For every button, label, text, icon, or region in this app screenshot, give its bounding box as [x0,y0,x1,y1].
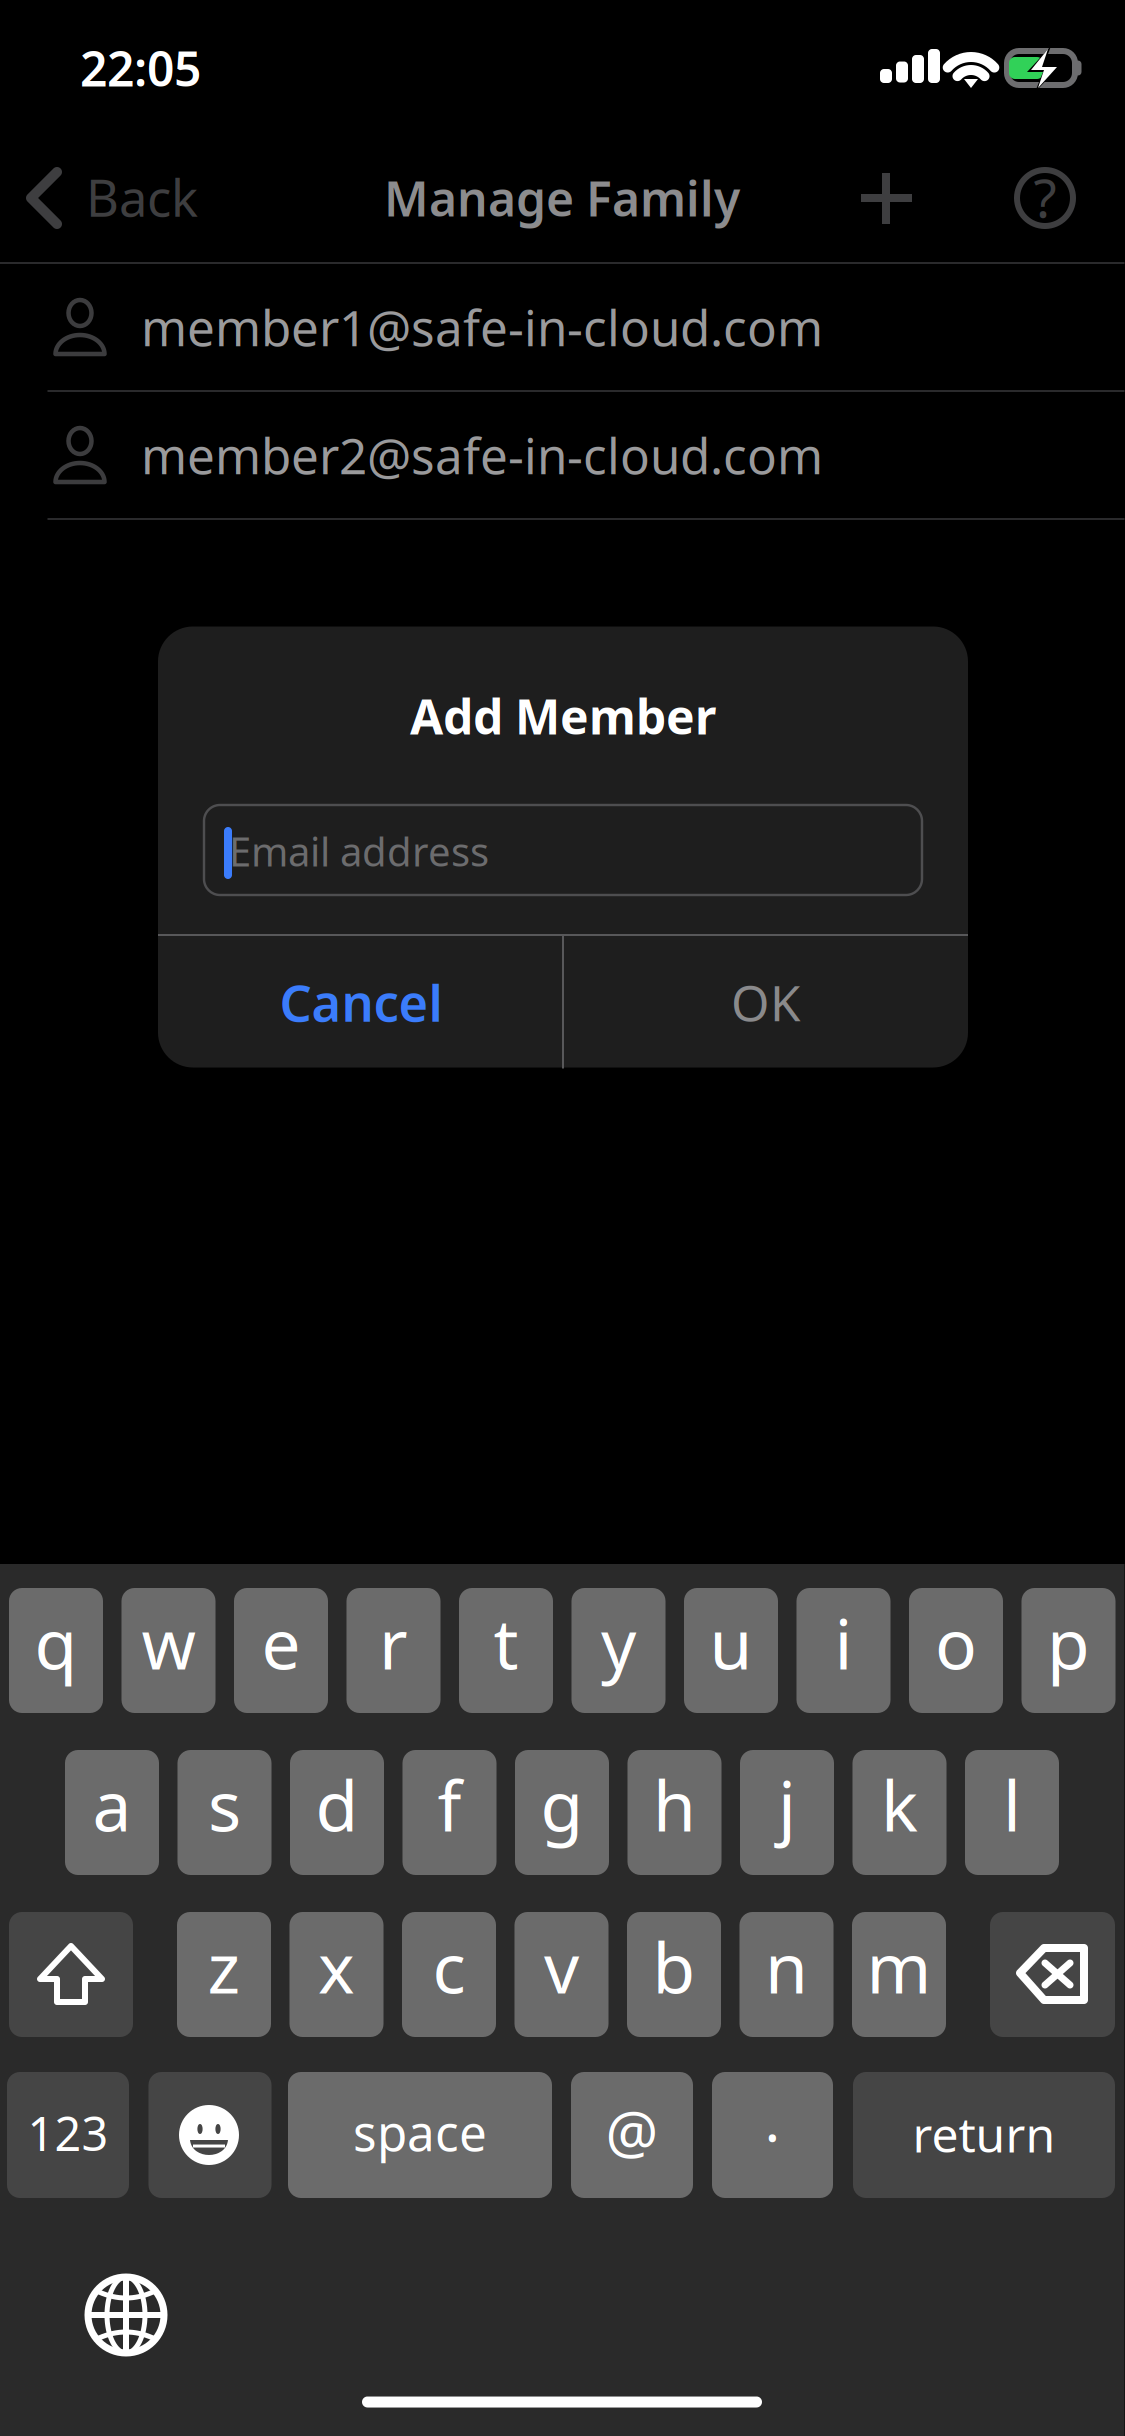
button[interactable]: q [9,1588,103,1713]
button[interactable]: s [177,1750,271,1875]
staticText: z [207,1920,240,2013]
staticText: n [765,1920,808,2013]
staticText: e [261,1596,300,1689]
staticText: b [652,1920,695,2013]
staticText: r [379,1596,408,1689]
button[interactable]: r [346,1588,440,1713]
button[interactable]: . [712,2072,833,2198]
button[interactable]: @ [571,2072,693,2198]
staticText: o [935,1596,977,1689]
button[interactable]: v [514,1912,608,2037]
button[interactable]: Back [0,0,1125,2436]
staticText: Add Member [410,684,716,748]
button[interactable]: Delete [0,0,1125,2436]
staticText: member2@safe-in-cloud.com [141,422,823,488]
button[interactable]: Cancel [0,0,1125,2436]
button[interactable]: d [290,1750,384,1875]
staticText: d [315,1758,358,1851]
staticText: @ [605,2092,658,2170]
staticText: Email address [229,824,489,877]
button[interactable]: g [515,1750,609,1875]
staticText: 123 [27,2102,108,2164]
button[interactable]: return [853,2072,1115,2198]
button[interactable]: Next keyboard [0,0,1125,2436]
button[interactable]: z [177,1912,271,2037]
button[interactable]: y [571,1588,665,1713]
staticText: t [493,1596,518,1689]
staticText: s [208,1758,241,1851]
staticText: member1@safe-in-cloud.com [141,294,823,360]
button[interactable]: space [288,2072,552,2198]
button[interactable]: p [1021,1588,1115,1713]
button[interactable]: member1@safe-in-cloud.com [0,0,1125,2436]
staticText: k [881,1758,918,1851]
staticText: l [1003,1758,1021,1851]
staticText: Cancel [279,968,442,1036]
button[interactable]: t [459,1588,553,1713]
staticText: Manage Family [384,166,740,230]
button[interactable]: OK [0,0,1125,2436]
button[interactable]: l [965,1750,1059,1875]
staticText: g [540,1758,583,1851]
button[interactable]: 123 [7,2072,129,2198]
button[interactable]: f [402,1750,496,1875]
staticText: w [141,1596,195,1689]
staticText: p [1047,1596,1090,1689]
button[interactable]: o [909,1588,1003,1713]
staticText: q [34,1596,77,1689]
staticText: y [601,1596,636,1689]
button[interactable]: Add member [0,0,1125,2436]
staticText: c [432,1920,465,2013]
staticText: i [834,1596,852,1689]
button[interactable]: b [627,1912,721,2037]
staticText: return [912,2102,1055,2166]
button[interactable]: j [740,1750,834,1875]
staticText: space [353,2099,487,2165]
staticText: Back [86,163,198,231]
staticText: OK [731,969,801,1035]
button[interactable]: c [402,1912,496,2037]
staticText: h [653,1758,696,1851]
button[interactable]: Help [0,0,1125,2436]
staticText: x [318,1920,355,2013]
staticText: v [544,1920,579,2013]
button[interactable]: w [121,1588,215,1713]
button[interactable]: Shift [0,0,1125,2436]
staticText: ? [1033,162,1056,232]
button[interactable]: u [684,1588,778,1713]
staticText: j [778,1758,796,1851]
button[interactable]: n [739,1912,833,2037]
staticText: u [709,1596,752,1689]
staticText: 22:05 [80,36,201,100]
button[interactable]: a [65,1750,159,1875]
button[interactable]: member2@safe-in-cloud.com [0,0,1125,2436]
staticText: m [866,1920,931,2013]
button[interactable]: m [852,1912,946,2037]
button[interactable]: h [627,1750,721,1875]
button[interactable]: Emoji [0,0,1125,2436]
button[interactable]: i [796,1588,890,1713]
button[interactable]: e [234,1588,328,1713]
button[interactable]: k [852,1750,946,1875]
staticText: a [92,1758,131,1851]
staticText: . [764,2080,780,2158]
button[interactable]: x [289,1912,383,2037]
staticText: f [437,1758,461,1851]
